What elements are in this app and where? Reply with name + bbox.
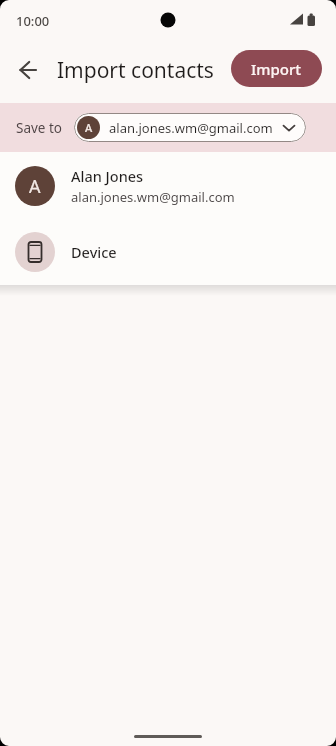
staticText: Save to	[16, 119, 63, 137]
staticText: alan.jones.wm@gmail.com	[109, 119, 273, 137]
staticText: Alan Jones	[71, 166, 144, 186]
staticText: Import contacts	[57, 56, 214, 85]
staticText: A	[29, 174, 41, 199]
staticText: alan.jones.wm@gmail.com	[71, 188, 235, 206]
button[interactable]: Device	[0, 219, 336, 285]
button[interactable]: A	[0, 152, 336, 219]
button[interactable]	[8, 50, 48, 90]
staticText: Import	[251, 59, 302, 79]
button[interactable]: A	[74, 113, 306, 142]
staticText: 10:00	[16, 12, 50, 30]
staticText: A	[85, 120, 93, 135]
button[interactable]: Import	[231, 50, 322, 87]
staticText: Device	[71, 242, 117, 262]
